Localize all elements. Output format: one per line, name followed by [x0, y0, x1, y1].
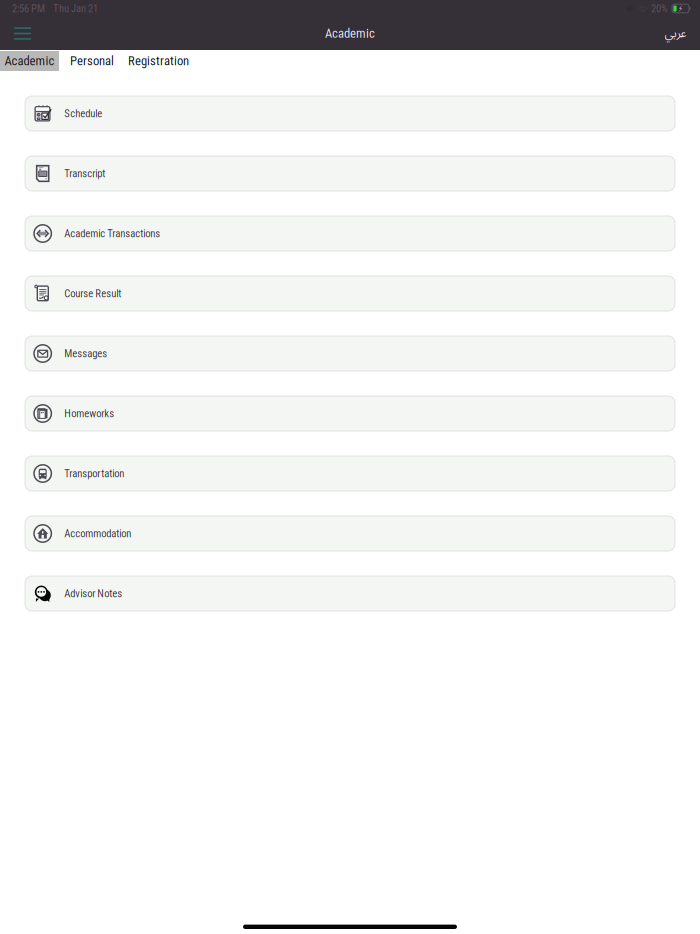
staticText: Schedule [64, 107, 102, 120]
button[interactable]: Academic Transactions [25, 216, 675, 251]
button[interactable]: Accommodation [25, 516, 675, 551]
staticText: Personal [70, 54, 114, 68]
staticText: Academic [325, 26, 375, 41]
button[interactable]: Registration [128, 51, 189, 71]
staticText: عربي [664, 21, 686, 46]
staticText: Registration [128, 54, 189, 68]
button[interactable]: Transcript [25, 156, 675, 191]
button[interactable]: Academic [0, 51, 59, 71]
staticText: Thu Jan 21 [53, 2, 98, 15]
staticText: 2:56 PM [12, 2, 45, 15]
button[interactable]: Homeworks [25, 396, 675, 431]
staticText: Transcript [64, 167, 105, 180]
button[interactable]: Menu [14, 17, 44, 50]
staticText: Homeworks [64, 407, 114, 420]
staticText: 20% [651, 2, 668, 15]
staticText: Advisor Notes [64, 587, 122, 600]
staticText: Academic [4, 54, 54, 68]
button[interactable]: Course Result [25, 276, 675, 311]
staticText: Messages [64, 347, 107, 360]
staticText: Accommodation [64, 527, 131, 540]
staticText: Transportation [64, 467, 124, 480]
staticText: Academic Transactions [64, 227, 160, 240]
button[interactable]: عربي [664, 17, 686, 50]
staticText: Course Result [64, 287, 121, 300]
button[interactable]: Schedule [25, 96, 675, 131]
button[interactable]: Personal [70, 51, 114, 71]
button[interactable]: Advisor Notes [25, 576, 675, 611]
button[interactable]: Transportation [25, 456, 675, 491]
button[interactable]: Messages [25, 336, 675, 371]
